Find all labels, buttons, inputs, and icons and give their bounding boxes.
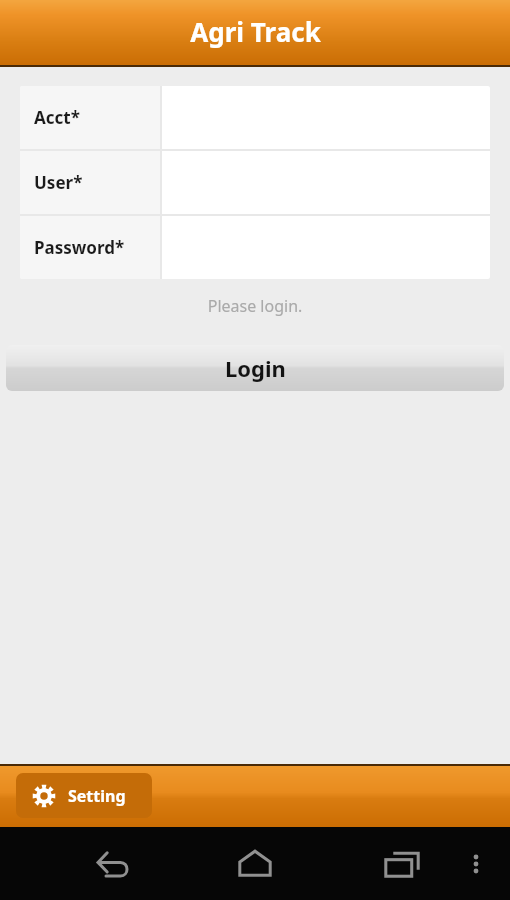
staticText: Password*	[34, 236, 125, 259]
button[interactable]: Acct*	[20, 86, 490, 149]
staticText: Agri Track	[190, 14, 321, 49]
button[interactable]: Login	[6, 345, 504, 391]
button[interactable]: Home	[229, 838, 281, 890]
button[interactable]: More options	[454, 842, 498, 886]
staticText: Setting	[68, 785, 126, 807]
staticText: Please login.	[0, 295, 510, 317]
button[interactable]: Recents	[376, 838, 428, 890]
staticText: Acct*	[34, 106, 80, 129]
staticText: User*	[34, 171, 83, 194]
staticText: Login	[225, 353, 286, 383]
button[interactable]: User*	[20, 151, 490, 214]
button[interactable]: Password*	[20, 216, 490, 279]
button[interactable]: Setting	[16, 773, 152, 818]
button[interactable]: Back	[88, 838, 140, 890]
